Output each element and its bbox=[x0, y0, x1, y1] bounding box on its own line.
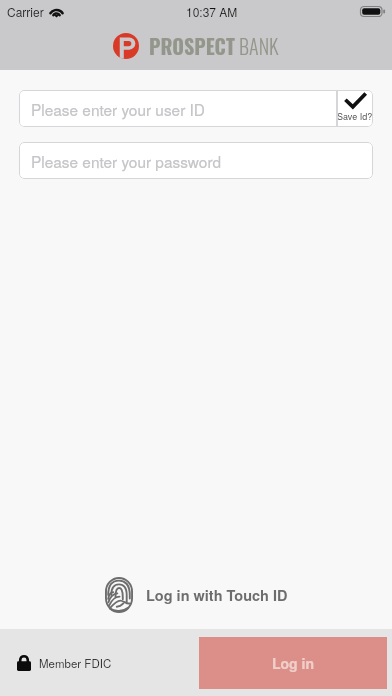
button[interactable]: Log in bbox=[199, 637, 387, 689]
staticText: Member FDIC bbox=[39, 655, 112, 671]
button[interactable]: Please enter your user ID bbox=[19, 90, 337, 127]
staticText: Log in with Touch ID bbox=[146, 585, 288, 606]
staticText: Log in bbox=[272, 653, 314, 673]
staticText: PROSPECT bbox=[149, 31, 235, 61]
staticText: Save Id? bbox=[337, 110, 373, 123]
staticText: 10:37 AM bbox=[186, 3, 238, 20]
staticText: Please enter your user ID bbox=[31, 98, 205, 120]
button[interactable]: Please enter your password bbox=[19, 142, 373, 179]
staticText: Carrier bbox=[7, 3, 44, 20]
staticText: BANK bbox=[235, 31, 279, 61]
button[interactable]: Log in with Touch ID bbox=[0, 569, 392, 621]
staticText: Please enter your password bbox=[31, 150, 222, 172]
button[interactable]: Save Id? bbox=[337, 90, 373, 127]
